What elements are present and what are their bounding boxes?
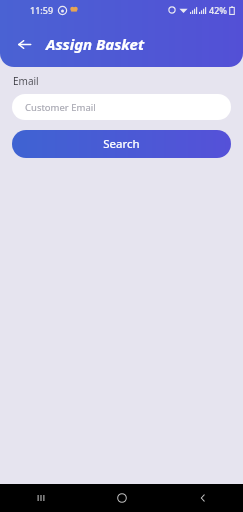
- button[interactable]: Back: [10, 30, 38, 58]
- button[interactable]: Recent apps: [0, 484, 81, 512]
- staticText: Assign Basket: [46, 34, 145, 54]
- staticText: 42%: [209, 4, 227, 16]
- button[interactable]: Search: [12, 130, 231, 158]
- button[interactable]: Home: [81, 484, 162, 512]
- staticText: Customer Email: [25, 101, 96, 114]
- staticText: 11:59: [30, 4, 54, 16]
- button[interactable]: Back: [162, 484, 243, 512]
- button[interactable]: Customer Email: [12, 94, 231, 120]
- staticText: Email: [13, 74, 39, 88]
- staticText: Search: [103, 136, 140, 152]
